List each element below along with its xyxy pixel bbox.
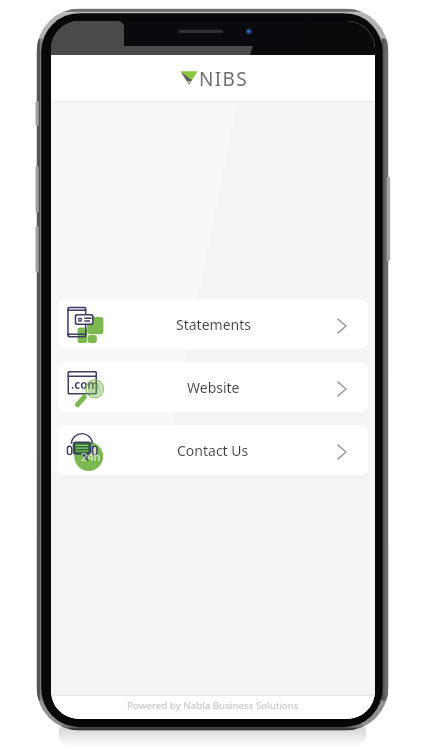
staticText: 24h <box>81 449 101 464</box>
button[interactable]: 24h <box>58 425 368 475</box>
staticText: .com <box>71 377 99 393</box>
staticText: Statements <box>176 315 251 334</box>
staticText: Contact Us <box>177 441 249 460</box>
staticText: Powered by Nabla Business Solutions <box>127 699 299 712</box>
staticText: Website <box>187 378 240 397</box>
button[interactable]: .com <box>58 362 368 412</box>
staticText: NIBS <box>199 66 249 86</box>
button[interactable]: Statements <box>58 299 368 349</box>
